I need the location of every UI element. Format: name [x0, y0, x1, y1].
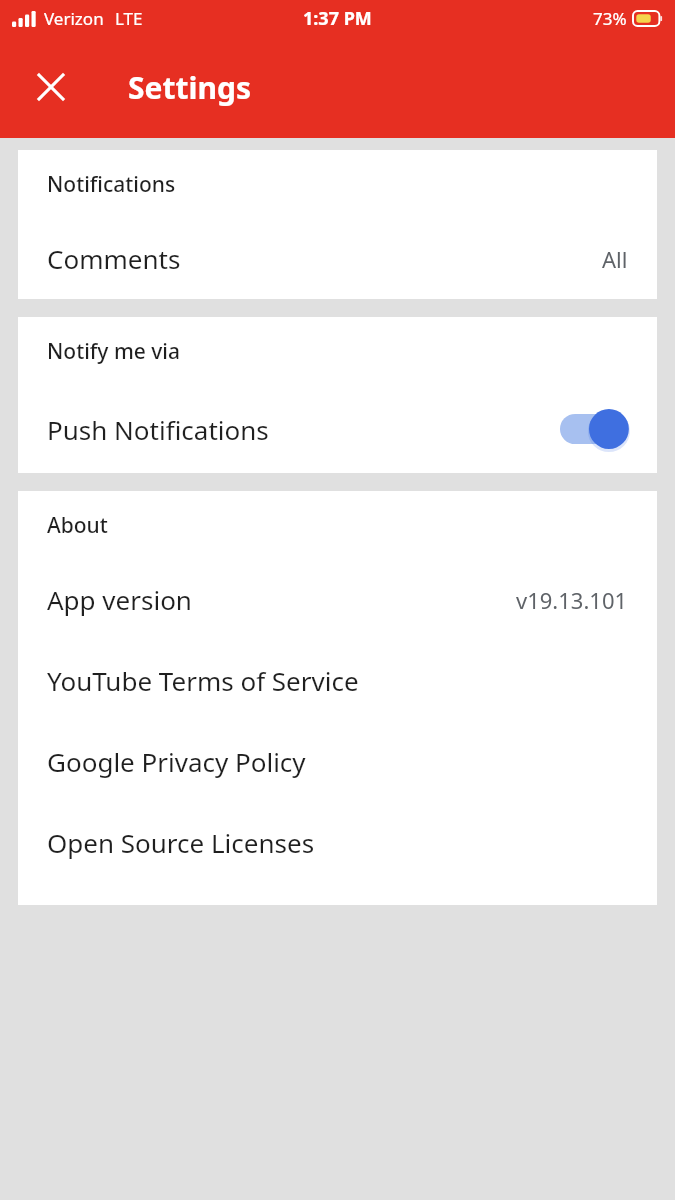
staticText: Google Privacy Policy: [47, 744, 628, 779]
button[interactable]: Push Notifications: [18, 385, 657, 473]
button[interactable]: Open Source Licenses: [18, 802, 657, 883]
staticText: About: [47, 511, 108, 540]
staticText: Settings: [128, 67, 251, 108]
button[interactable]: Comments: [18, 218, 657, 299]
button[interactable]: Google Privacy Policy: [18, 721, 657, 802]
staticText: Push Notifications: [47, 412, 560, 447]
button[interactable]: YouTube Terms of Service: [18, 640, 657, 721]
staticText: Comments: [47, 241, 602, 276]
staticText: Verizon: [44, 7, 104, 30]
staticText: Open Source Licenses: [47, 825, 628, 860]
staticText: Notify me via: [47, 337, 181, 366]
staticText: YouTube Terms of Service: [47, 663, 628, 698]
button[interactable]: App version: [18, 559, 657, 640]
button[interactable]: Close: [22, 58, 80, 116]
staticText: 1:37 PM: [303, 6, 372, 31]
staticText: Notifications: [47, 170, 176, 199]
staticText: LTE: [115, 7, 143, 30]
staticText: App version: [47, 582, 516, 617]
staticText: 73%: [593, 7, 627, 30]
staticText: v19.13.101: [516, 585, 628, 615]
staticText: All: [602, 244, 628, 274]
